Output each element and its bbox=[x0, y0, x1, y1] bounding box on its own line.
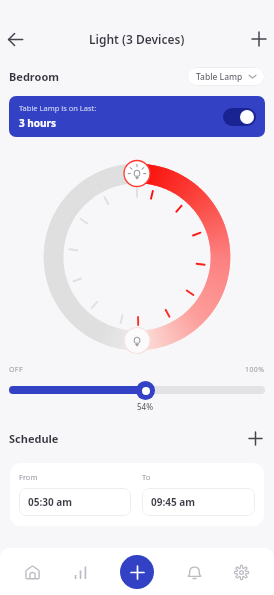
staticText: Bedroom bbox=[9, 69, 60, 84]
button[interactable]: 09:45 am bbox=[142, 488, 255, 516]
staticText: Schedule bbox=[9, 431, 59, 446]
staticText: Table Lamp is on Last: bbox=[19, 103, 97, 113]
button[interactable]: Home bbox=[17, 557, 47, 587]
button[interactable]: Notifications bbox=[179, 557, 209, 587]
button[interactable]: Brightness bbox=[136, 381, 155, 400]
button[interactable]: Add bbox=[120, 555, 154, 589]
staticText: 09:45 am bbox=[151, 495, 196, 509]
staticText: 54% bbox=[137, 401, 153, 412]
staticText: Light (3 Devices) bbox=[89, 31, 185, 47]
button[interactable]: Add device bbox=[246, 26, 272, 52]
staticText: To bbox=[142, 472, 151, 482]
staticText: OFF bbox=[9, 365, 23, 375]
staticText: Table Lamp bbox=[196, 71, 243, 83]
staticText: From bbox=[19, 472, 38, 482]
staticText: 100% bbox=[245, 365, 265, 375]
staticText: 3 hours bbox=[19, 116, 57, 130]
button[interactable]: Table Lamp is on Last: bbox=[9, 96, 265, 137]
button[interactable]: Toggle light bbox=[223, 108, 256, 126]
button[interactable]: Add schedule bbox=[245, 428, 265, 448]
button[interactable]: Settings bbox=[226, 557, 256, 587]
button[interactable]: Back bbox=[2, 26, 28, 52]
button[interactable]: Statistics bbox=[65, 557, 95, 587]
staticText: 05:30 am bbox=[28, 495, 73, 509]
button[interactable]: Table Lamp bbox=[187, 67, 265, 86]
button[interactable]: 05:30 am bbox=[19, 488, 131, 516]
